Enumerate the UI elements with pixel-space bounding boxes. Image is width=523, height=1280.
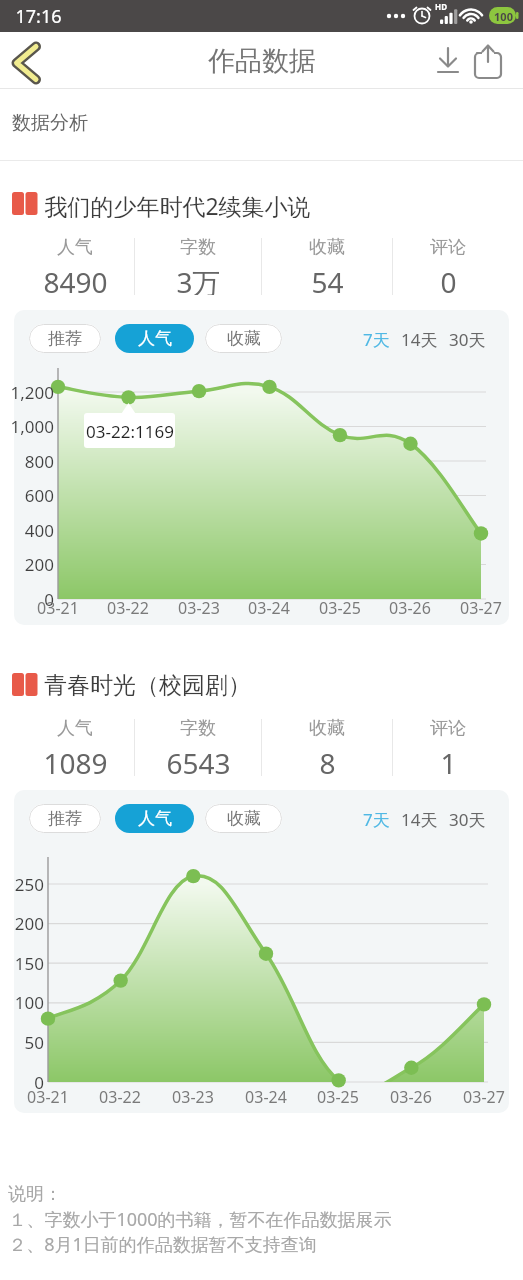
staticText: 评论 xyxy=(430,717,466,739)
staticText: 03-26 xyxy=(389,597,431,619)
staticText: 03-22 xyxy=(107,597,149,619)
button[interactable]: 推荐 xyxy=(29,804,101,833)
staticText: 17:16 xyxy=(15,4,62,28)
button[interactable] xyxy=(6,42,48,82)
staticText: 人气 xyxy=(138,808,172,829)
staticText: 人气 xyxy=(57,236,93,258)
staticText: 1089 xyxy=(43,744,108,776)
staticText: 14天 xyxy=(401,328,438,351)
staticText: 54 xyxy=(311,263,344,295)
staticText: 青春时光（校园剧） xyxy=(44,671,251,699)
staticText: 100 xyxy=(494,9,513,24)
staticText: 人气 xyxy=(138,328,172,349)
staticText: 600 xyxy=(24,484,54,506)
staticText: 8490 xyxy=(43,263,108,295)
button[interactable] xyxy=(468,42,508,82)
button[interactable]: 14天 xyxy=(398,807,440,831)
staticText: 1,000 xyxy=(10,415,54,437)
staticText: 03-21 xyxy=(27,1086,69,1108)
staticText: ２、8月1日前的作品数据暂不支持查询 xyxy=(8,1232,317,1256)
staticText: 收藏 xyxy=(227,808,261,829)
staticText: 字数 xyxy=(180,717,216,739)
button[interactable]: 14天 xyxy=(398,327,440,351)
staticText: 800 xyxy=(24,450,54,472)
staticText: １、字数小于1000的书籍，暂不在作品数据展示 xyxy=(8,1207,392,1231)
staticText: 6543 xyxy=(166,744,231,776)
staticText: 03-24 xyxy=(248,597,290,619)
staticText: 字数 xyxy=(180,236,216,258)
staticText: 1 xyxy=(440,744,457,776)
staticText: 1,200 xyxy=(10,381,54,403)
staticText: 200 xyxy=(24,553,54,575)
staticText: 400 xyxy=(24,519,54,541)
staticText: 收藏 xyxy=(227,328,261,349)
staticText: 03-23 xyxy=(172,1086,214,1108)
button[interactable]: 人气 xyxy=(115,804,194,833)
staticText: 03-22 xyxy=(99,1086,141,1108)
staticText: 7天 xyxy=(363,808,390,831)
staticText: 推荐 xyxy=(48,328,82,349)
staticText: 8 xyxy=(319,744,336,776)
staticText: 推荐 xyxy=(48,808,82,829)
staticText: 30天 xyxy=(449,808,486,831)
button[interactable]: 7天 xyxy=(358,327,394,351)
staticText: 3万 xyxy=(176,263,221,295)
staticText: 收藏 xyxy=(309,717,345,739)
staticText: 150 xyxy=(14,952,44,974)
staticText: 作品数据 xyxy=(208,44,316,78)
staticText: 0 xyxy=(440,263,457,295)
staticText: 7天 xyxy=(363,328,390,351)
staticText: 30天 xyxy=(449,328,486,351)
button[interactable]: 推荐 xyxy=(29,324,101,353)
staticText: 03-25 xyxy=(317,1086,359,1108)
staticText: 0 xyxy=(34,1071,44,1093)
button[interactable]: 收藏 xyxy=(205,324,282,353)
staticText: 我们的少年时代2续集小说 xyxy=(44,190,311,218)
staticText: 03-22:1169 xyxy=(86,420,174,443)
button[interactable] xyxy=(428,42,468,82)
button[interactable]: 30天 xyxy=(446,807,488,831)
staticText: 03-25 xyxy=(319,597,361,619)
staticText: 收藏 xyxy=(309,236,345,258)
staticText: 50 xyxy=(24,1031,44,1053)
staticText: 数据分析 xyxy=(12,111,88,135)
staticText: 250 xyxy=(14,873,44,895)
staticText: 200 xyxy=(14,912,44,934)
staticText: 03-26 xyxy=(390,1086,432,1108)
staticText: 100 xyxy=(14,991,44,1013)
staticText: 说明： xyxy=(8,1183,62,1205)
staticText: 03-21 xyxy=(37,597,79,619)
button[interactable]: 收藏 xyxy=(205,804,282,833)
button[interactable]: 人气 xyxy=(115,324,194,353)
staticText: 03-27 xyxy=(463,1086,505,1108)
staticText: 03-23 xyxy=(178,597,220,619)
staticText: 0 xyxy=(44,588,54,610)
staticText: 03-24 xyxy=(245,1086,287,1108)
staticText: HD xyxy=(435,1,447,11)
staticText: 评论 xyxy=(430,236,466,258)
staticText: 14天 xyxy=(401,808,438,831)
button[interactable]: 7天 xyxy=(358,807,394,831)
staticText: 03-27 xyxy=(460,597,502,619)
button[interactable]: 30天 xyxy=(446,327,488,351)
staticText: 人气 xyxy=(57,717,93,739)
